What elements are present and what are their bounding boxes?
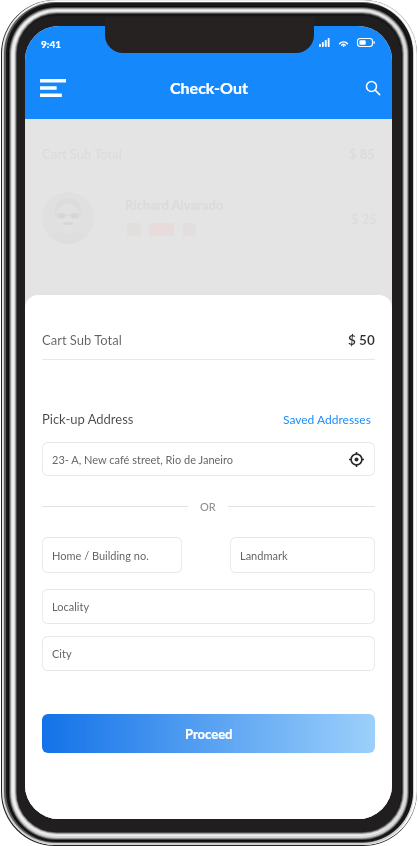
- staticText: Cart Sub Total: [42, 332, 122, 348]
- button[interactable]: Landmark: [230, 537, 375, 573]
- staticText: Richard Alvarado: [125, 197, 224, 213]
- staticText: Proceed: [185, 726, 233, 742]
- button[interactable]: Saved Addresses: [283, 412, 375, 426]
- staticText: $ 50: [348, 332, 375, 348]
- button[interactable]: Menu: [33, 72, 73, 104]
- staticText: Check-Out: [170, 78, 248, 97]
- staticText: $ 85: [349, 146, 375, 162]
- staticText: Landmark: [240, 549, 288, 562]
- button[interactable]: City: [42, 636, 375, 671]
- staticText: OR: [200, 500, 216, 513]
- staticText: Pick-up Address: [42, 411, 134, 427]
- staticText: 23- A, New café street, Rio de Janeiro: [52, 453, 233, 466]
- staticText: Locality: [52, 600, 90, 613]
- staticText: Saved Addresses: [283, 412, 371, 426]
- button[interactable]: Home / Building no.: [42, 537, 182, 573]
- button[interactable]: Locality: [42, 589, 375, 624]
- button[interactable]: 23- A, New café street, Rio de Janeiro: [42, 442, 375, 476]
- staticText: City: [52, 647, 72, 660]
- button[interactable]: Search: [358, 73, 390, 105]
- staticText: Home / Building no.: [52, 549, 149, 562]
- staticText: 9:41: [41, 38, 61, 50]
- button[interactable]: Proceed: [42, 714, 375, 753]
